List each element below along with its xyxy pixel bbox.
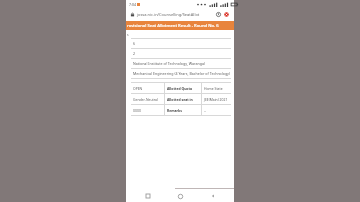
staticText: OPEN xyxy=(133,86,143,91)
button[interactable]: Back xyxy=(202,190,224,202)
staticText: XXXX xyxy=(133,108,141,113)
staticText: jossa.nic.in/Counselling/SeatAllot xyxy=(137,12,200,17)
staticText: Remarks xyxy=(167,108,182,113)
other: Secure connection xyxy=(130,12,135,17)
staticText: 2 xyxy=(133,51,136,56)
staticText: National Institute of Technology, Warang… xyxy=(133,61,205,66)
staticText: Allotted Quota xyxy=(167,86,192,91)
staticText: Mechanical Engineering (4 Years, Bachelo… xyxy=(133,71,231,76)
button[interactable]: Stop loading xyxy=(223,11,230,18)
staticText: -- xyxy=(204,108,207,113)
staticText: JEE(Main) 2021 (B... xyxy=(204,97,231,102)
button[interactable]: Home xyxy=(169,190,191,202)
staticText: rovisional Seat Allotment Result - Round… xyxy=(127,23,219,29)
staticText: Home State xyxy=(204,86,223,91)
staticText: Gender-Neutral xyxy=(133,97,158,102)
staticText: 6 xyxy=(133,41,136,46)
button[interactable]: Recent apps xyxy=(137,190,159,202)
staticText: s xyxy=(127,33,129,37)
staticText: 7:04 xyxy=(129,2,136,7)
button[interactable]: jossa.nic.in/Counselling/SeatAllot xyxy=(137,12,213,17)
staticText: Allotted seat in xyxy=(167,97,193,102)
button[interactable]: Share xyxy=(215,11,222,18)
